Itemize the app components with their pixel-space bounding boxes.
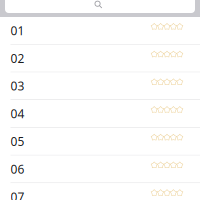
button[interactable]: 01 bbox=[0, 17, 200, 45]
staticText: 04 bbox=[10, 106, 24, 122]
staticText: 06 bbox=[10, 161, 24, 177]
staticText: 02 bbox=[10, 50, 24, 66]
staticText: 01 bbox=[10, 23, 24, 38]
button[interactable]: 05 bbox=[0, 128, 200, 155]
button[interactable]: 04 bbox=[0, 100, 200, 128]
button[interactable]: Search bbox=[5, 0, 195, 13]
staticText: 07 bbox=[10, 189, 24, 200]
staticText: 03 bbox=[10, 78, 24, 94]
button[interactable]: 06 bbox=[0, 155, 200, 183]
staticText: 05 bbox=[10, 133, 24, 149]
button[interactable]: 03 bbox=[0, 72, 200, 100]
button[interactable]: 07 bbox=[0, 183, 200, 200]
button[interactable]: 02 bbox=[0, 45, 200, 72]
